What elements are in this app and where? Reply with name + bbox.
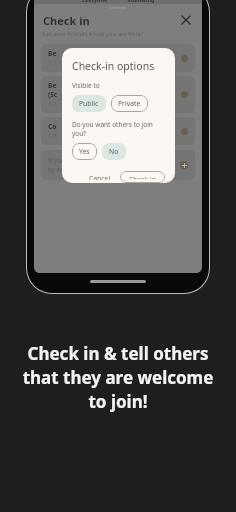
- staticText: 1.7: [48, 132, 57, 140]
- button[interactable]: No: [102, 143, 126, 160]
- button[interactable]: Following: [124, 0, 159, 3]
- staticText: Private: [118, 99, 141, 108]
- button[interactable]: Everyone: [78, 0, 112, 3]
- staticText: Public: [79, 99, 99, 108]
- staticText: Check in: [43, 13, 90, 28]
- staticText: Do you want others to join you?: [72, 120, 165, 138]
- button[interactable]: If you cannot find your gym, help us fin…: [41, 150, 195, 180]
- staticText: Check in: [129, 175, 156, 179]
- staticText: Following: [128, 0, 155, 3]
- button[interactable]: Public: [72, 95, 106, 112]
- button[interactable]: Check in: [120, 171, 165, 183]
- staticText: Co: [48, 122, 57, 131]
- staticText: Let your friends know you are here!: [43, 30, 143, 38]
- staticText: 1.7: [48, 100, 57, 108]
- staticText: 1.7: [48, 59, 57, 67]
- staticText: Check in & tell others that they are wel…: [8, 342, 228, 413]
- staticText: Cancel: [89, 174, 111, 180]
- staticText: Be: [48, 49, 57, 58]
- button[interactable]: Be: [41, 44, 195, 72]
- button[interactable]: Yes: [72, 143, 97, 160]
- button[interactable]: Private: [111, 95, 148, 112]
- staticText: Be (Sc: [48, 81, 58, 99]
- button[interactable]: Close: [179, 13, 193, 27]
- staticText: Check-in options: [72, 59, 155, 73]
- staticText: Visible to: [72, 81, 100, 90]
- button[interactable]: Be (Sc: [41, 76, 195, 113]
- button[interactable]: Cancel: [84, 171, 116, 183]
- staticText: No: [109, 147, 119, 156]
- staticText: Yes: [79, 147, 90, 156]
- button[interactable]: Co: [41, 117, 195, 145]
- staticText: Everyone: [82, 0, 108, 3]
- staticText: If you cannot find your gym, help us fin…: [48, 156, 180, 174]
